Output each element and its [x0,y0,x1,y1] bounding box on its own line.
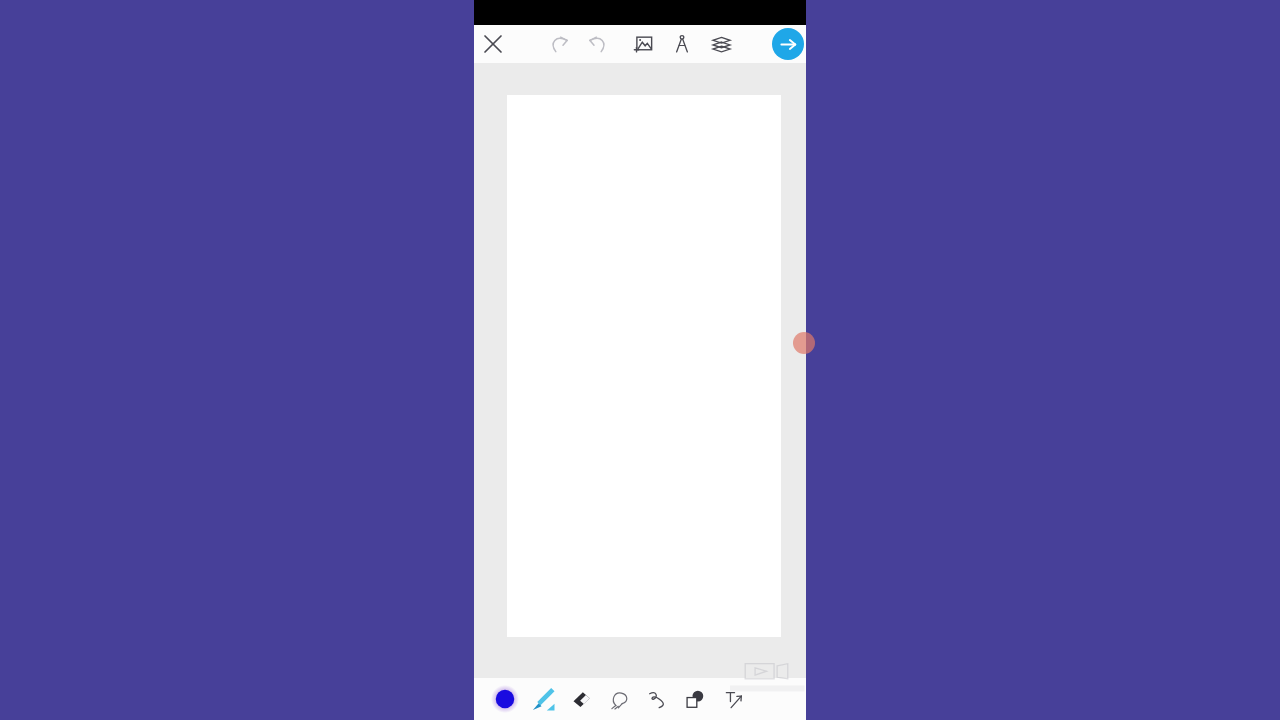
button[interactable]: Record [793,332,815,354]
button[interactable]: Redo [579,25,617,63]
button[interactable]: Compass tool [663,25,701,63]
button[interactable]: Color [486,680,524,718]
button[interactable]: Close [474,25,512,63]
button[interactable]: Brush [524,680,562,718]
button[interactable]: Eraser [562,680,600,718]
button[interactable]: Add image [624,25,662,63]
button[interactable]: Shapes [676,680,714,718]
button[interactable]: Undo [540,25,578,63]
button[interactable]: Smudge [600,680,638,718]
button[interactable]: Next [772,28,804,60]
button[interactable]: Text [714,680,752,718]
button[interactable]: Layers [702,25,740,63]
button[interactable]: Select [638,680,676,718]
